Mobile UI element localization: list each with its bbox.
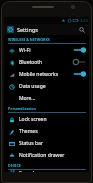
staticText: Bluetooth (19, 59, 43, 66)
staticText: Notification drawer (19, 152, 65, 159)
staticText: Sound (19, 170, 35, 172)
button[interactable]: Status bar (4, 137, 89, 149)
staticText: Settings (17, 26, 38, 33)
staticText: Mobile networks (19, 71, 59, 78)
button[interactable]: Bluetooth (4, 56, 89, 68)
button[interactable]: Notification drawer (4, 149, 89, 161)
button[interactable]: On (73, 70, 86, 78)
staticText: Status bar (19, 140, 43, 147)
button[interactable]: Mobile networks (4, 68, 89, 80)
staticText: DEVICE (8, 163, 21, 168)
button[interactable]: Lock screen (4, 113, 89, 125)
staticText: Personalization (8, 106, 36, 111)
button[interactable]: Sound (4, 170, 89, 172)
staticText: Data usage (19, 83, 46, 90)
button[interactable]: Data usage (4, 80, 89, 92)
staticText: Themes (19, 128, 38, 135)
button[interactable]: On (73, 46, 86, 54)
button[interactable]: More... (4, 92, 89, 104)
staticText: WIRELESS & NETWORKS (8, 37, 50, 42)
staticText: More... (19, 95, 36, 102)
button[interactable]: Wi-Fi (4, 44, 89, 56)
button[interactable]: Search (77, 25, 86, 34)
staticText: Wi-Fi (19, 47, 31, 54)
button[interactable]: Off (73, 58, 86, 66)
button[interactable]: Settings (4, 24, 89, 35)
button[interactable]: Themes (4, 125, 89, 137)
staticText: Lock screen (19, 116, 47, 123)
staticText: 3:25 (80, 18, 88, 23)
